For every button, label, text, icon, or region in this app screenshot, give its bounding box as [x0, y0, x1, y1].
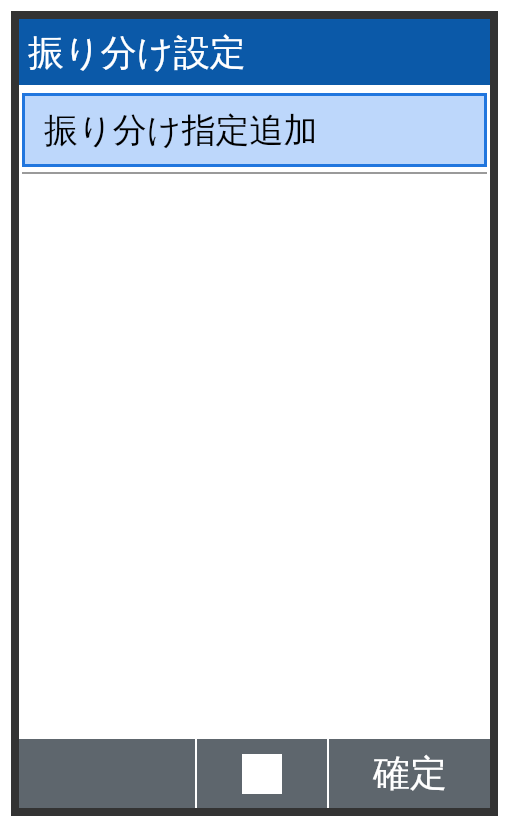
button[interactable]: 確定 [329, 739, 490, 808]
staticText: 振り分け指定追加 [44, 109, 318, 152]
staticText: 確定 [373, 750, 447, 797]
button[interactable]: 振り分け指定追加 [22, 93, 487, 167]
staticText: 振り分け設定 [28, 30, 246, 75]
button[interactable]: Select [197, 739, 327, 808]
